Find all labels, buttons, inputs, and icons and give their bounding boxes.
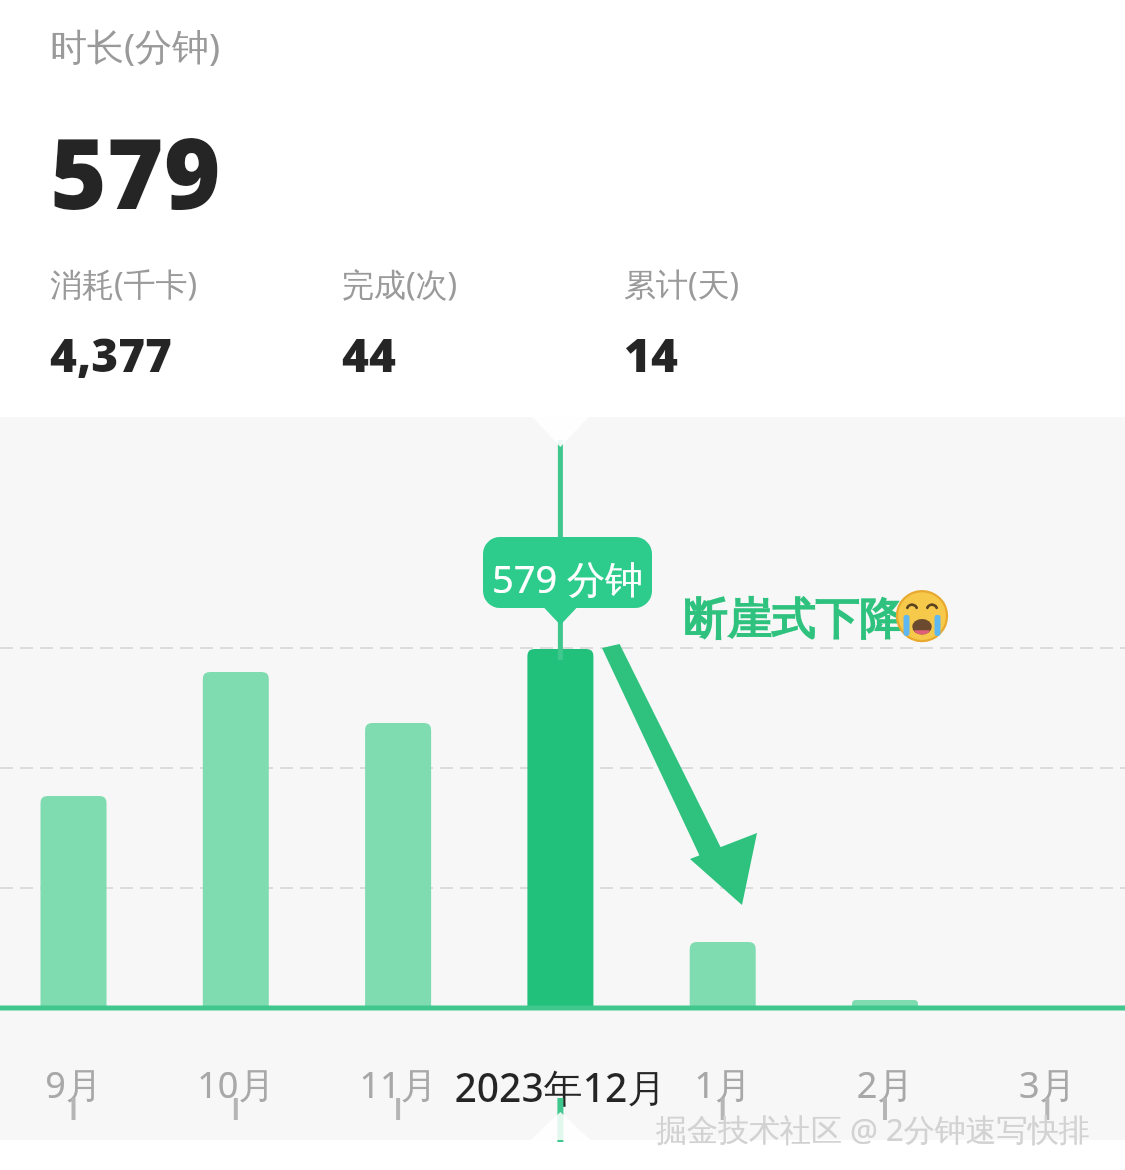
button[interactable]: 2月	[804, 417, 966, 1140]
button[interactable]: 2023年12月	[479, 417, 641, 1140]
button[interactable]: 9月	[0, 417, 154, 1140]
button[interactable]: 10月	[155, 417, 317, 1140]
button[interactable]: 579 分钟	[483, 537, 652, 617]
button[interactable]: 1月	[642, 417, 804, 1140]
button[interactable]: 3月	[966, 417, 1125, 1140]
button[interactable]: 完成 44 次	[330, 250, 610, 380]
button[interactable]: 累计 14 天	[615, 250, 895, 380]
button[interactable]: 11月	[317, 417, 479, 1140]
button[interactable]: 消耗 4,377 千卡	[40, 250, 320, 380]
